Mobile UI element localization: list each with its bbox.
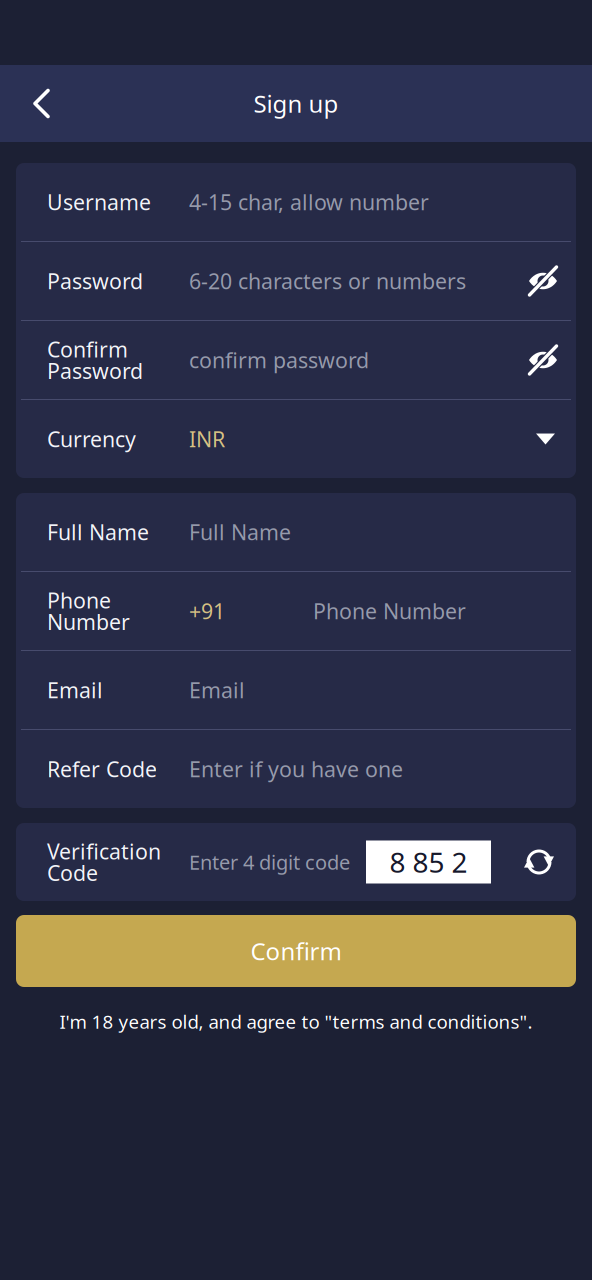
staticText: Currency bbox=[47, 425, 136, 453]
staticText: Email bbox=[189, 676, 245, 704]
button[interactable]: Refresh captcha bbox=[524, 836, 554, 888]
staticText: 4-15 char, allow number bbox=[189, 188, 429, 216]
staticText: Confirm bbox=[47, 335, 128, 363]
staticText: Refer Code bbox=[47, 755, 157, 783]
staticText: Enter 4 digit code bbox=[189, 849, 350, 875]
button[interactable]: Show confirm password bbox=[528, 348, 558, 371]
staticText: confirm password bbox=[189, 346, 369, 374]
staticText: Enter if you have one bbox=[189, 755, 403, 783]
staticText: Sign up bbox=[253, 88, 338, 119]
staticText: Code bbox=[47, 858, 98, 887]
button[interactable]: Show password bbox=[528, 269, 558, 292]
staticText: +91 bbox=[189, 597, 225, 625]
button[interactable]: Currency bbox=[16, 400, 576, 478]
staticText: I'm 18 years old, and agree to "terms an… bbox=[59, 1009, 532, 1034]
staticText: Email bbox=[47, 676, 103, 704]
staticText: 6-20 characters or numbers bbox=[189, 267, 466, 295]
staticText: Verification bbox=[47, 837, 161, 865]
staticText: Password bbox=[47, 267, 143, 295]
staticText: Phone bbox=[47, 586, 111, 614]
staticText: Username bbox=[47, 188, 151, 216]
staticText: Full Name bbox=[47, 518, 149, 546]
staticText: Phone Number bbox=[313, 597, 466, 625]
staticText: Password bbox=[47, 356, 143, 385]
staticText: Number bbox=[47, 607, 130, 636]
staticText: Full Name bbox=[189, 518, 291, 546]
staticText: INR bbox=[189, 425, 225, 453]
staticText: Confirm bbox=[250, 935, 341, 967]
button[interactable]: Back bbox=[13, 74, 71, 132]
staticText: 8 85 2 bbox=[389, 843, 467, 881]
button[interactable]: Confirm bbox=[16, 915, 576, 987]
